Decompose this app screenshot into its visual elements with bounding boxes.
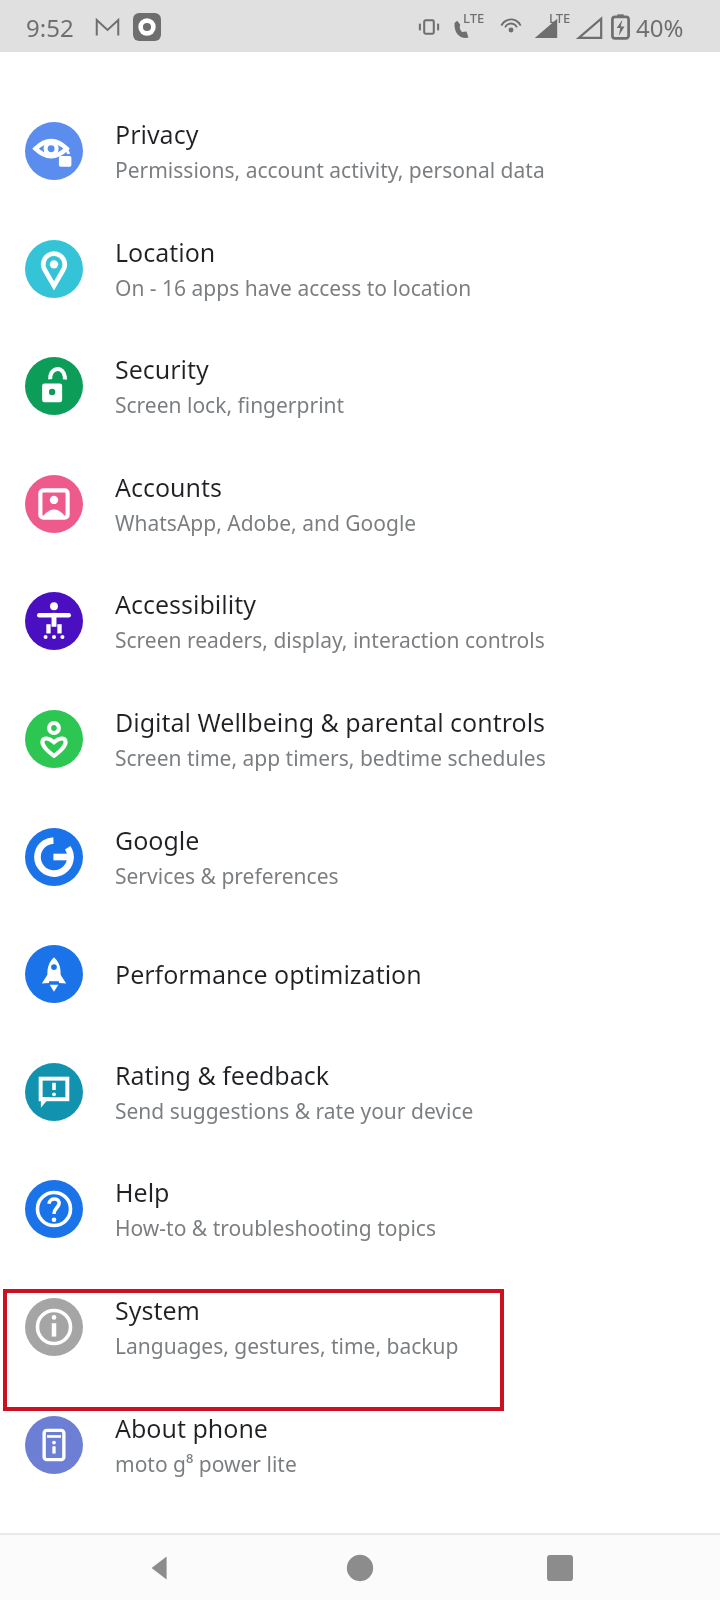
staticText: Permissions, account activity, personal … bbox=[115, 156, 545, 185]
staticText: Performance optimization bbox=[115, 957, 422, 991]
button[interactable]: Google bbox=[0, 798, 720, 916]
staticText: Security bbox=[115, 352, 209, 386]
staticText: 40% bbox=[636, 11, 684, 44]
staticText: moto g⁸ power lite bbox=[115, 1450, 297, 1479]
staticText: On - 16 apps have access to location bbox=[115, 274, 472, 303]
button[interactable]: Back bbox=[110, 1535, 210, 1600]
button[interactable]: Security bbox=[0, 327, 720, 445]
button[interactable]: Help bbox=[0, 1150, 720, 1268]
button[interactable]: Privacy bbox=[0, 92, 720, 210]
staticText: Send suggestions & rate your device bbox=[115, 1097, 474, 1126]
staticText: 9:52 bbox=[26, 11, 74, 44]
staticText: Google bbox=[115, 823, 200, 857]
staticText: Screen lock, fingerprint bbox=[115, 391, 345, 420]
staticText: Services & preferences bbox=[115, 862, 339, 891]
button[interactable]: Performance optimization bbox=[0, 915, 720, 1033]
staticText: Rating & feedback bbox=[115, 1058, 330, 1092]
staticText: LTE bbox=[549, 9, 571, 27]
button[interactable]: Rating & feedback bbox=[0, 1033, 720, 1151]
staticText: Help bbox=[115, 1175, 170, 1209]
staticText: How-to & troubleshooting topics bbox=[115, 1214, 436, 1243]
button[interactable]: Location bbox=[0, 210, 720, 328]
button[interactable]: Recent apps bbox=[510, 1535, 610, 1600]
staticText: Location bbox=[115, 235, 216, 269]
button[interactable]: Accounts bbox=[0, 445, 720, 563]
button[interactable]: System bbox=[0, 1268, 720, 1386]
button[interactable]: About phone bbox=[0, 1386, 720, 1504]
staticText: Accounts bbox=[115, 470, 223, 504]
staticText: Screen time, app timers, bedtime schedul… bbox=[115, 744, 546, 773]
button[interactable]: Home bbox=[310, 1535, 410, 1600]
staticText: Languages, gestures, time, backup bbox=[115, 1332, 459, 1361]
staticText: About phone bbox=[115, 1411, 268, 1445]
staticText: WhatsApp, Adobe, and Google bbox=[115, 509, 417, 538]
staticText: Privacy bbox=[115, 117, 199, 151]
button[interactable]: Accessibility bbox=[0, 562, 720, 680]
staticText: Screen readers, display, interaction con… bbox=[115, 626, 545, 655]
staticText: LTE bbox=[463, 9, 485, 27]
staticText: Accessibility bbox=[115, 587, 256, 621]
staticText: Digital Wellbeing & parental controls bbox=[115, 705, 546, 739]
staticText: System bbox=[115, 1293, 200, 1327]
button[interactable]: Digital Wellbeing & parental controls bbox=[0, 680, 720, 798]
